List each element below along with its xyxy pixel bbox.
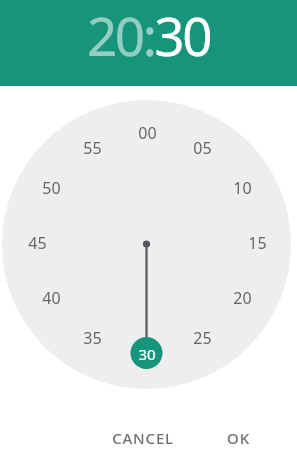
button[interactable]: 55 (75, 131, 109, 165)
button[interactable]: 35 (75, 321, 109, 355)
staticText: 55 (83, 137, 102, 159)
button[interactable]: 20 (225, 281, 259, 315)
button[interactable]: CANCEL (100, 420, 186, 456)
button[interactable]: 45 (20, 226, 54, 260)
staticText: 20 (233, 287, 252, 309)
staticText: 15 (248, 232, 267, 254)
button[interactable]: 00 (130, 116, 164, 150)
button[interactable]: 05 (185, 131, 219, 165)
staticText: 30 (138, 344, 156, 364)
staticText: 10 (233, 177, 252, 199)
staticText: 20:30 (87, 0, 210, 71)
staticText: 25 (193, 327, 212, 349)
button[interactable]: 20:30 (0, 0, 297, 86)
staticText: CANCEL (112, 428, 174, 448)
staticText: 05 (193, 137, 212, 159)
button[interactable]: 50 (34, 171, 68, 205)
button[interactable]: 40 (34, 281, 68, 315)
button[interactable]: 25 (185, 321, 219, 355)
staticText: 00 (138, 122, 157, 144)
button[interactable]: 15 (240, 226, 274, 260)
staticText: OK (227, 428, 250, 448)
button[interactable]: 30 (130, 337, 164, 371)
staticText: 50 (42, 177, 61, 199)
staticText: 40 (42, 287, 61, 309)
button[interactable]: OK (212, 420, 264, 456)
button[interactable]: 10 (225, 171, 259, 205)
staticText: 45 (28, 232, 47, 254)
staticText: 35 (83, 327, 102, 349)
